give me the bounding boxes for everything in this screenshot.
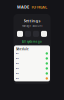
staticText: MADE <box>17 4 29 10</box>
staticText: Item 3 <box>16 63 19 64</box>
staticText: Item 6 <box>16 78 19 79</box>
staticText: All systems go <box>22 40 42 43</box>
staticText: TO HEAL <box>31 4 47 10</box>
staticText: Settings <box>23 18 40 23</box>
staticText: Item 1 <box>16 53 19 54</box>
staticText: Item 4 <box>16 68 19 69</box>
staticText: manage account <box>21 24 42 28</box>
staticText: Item 5 <box>16 73 19 74</box>
staticText: Item 2 <box>16 58 19 59</box>
staticText: Schedule <box>16 47 29 51</box>
